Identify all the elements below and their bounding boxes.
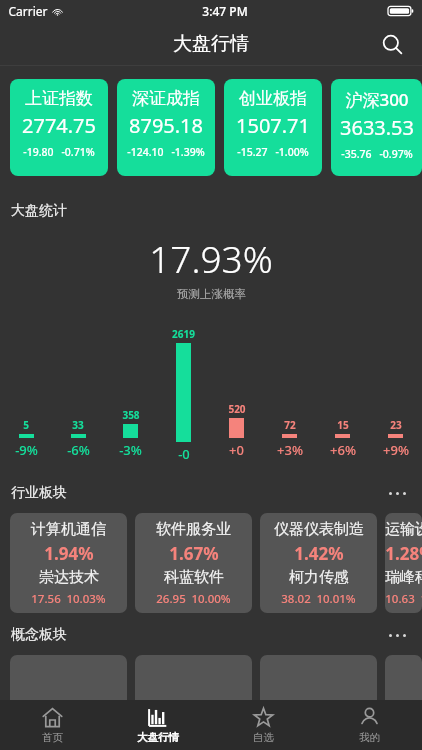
staticText: -124.10 [127, 145, 164, 159]
staticText: 仪器仪表制造 [274, 520, 364, 539]
staticText: 软件服务业 [156, 520, 231, 539]
staticText: -0.97% [379, 147, 413, 161]
staticText: +0 [229, 441, 244, 459]
button[interactable] [385, 655, 422, 750]
staticText: 3:47 PM [202, 3, 248, 19]
staticText: -3% [119, 441, 142, 459]
button[interactable]: 深证成指 [117, 79, 215, 176]
button[interactable]: 2619 [157, 327, 210, 459]
staticText: 358 [122, 408, 140, 422]
staticText: 计算机通信 [31, 520, 106, 539]
staticText: 运输设备 [385, 520, 422, 539]
button[interactable] [10, 655, 127, 750]
button[interactable]: 首页 [0, 700, 105, 750]
staticText: 2774.75 [22, 112, 96, 139]
button[interactable]: More [380, 481, 414, 505]
staticText: 5 [23, 418, 29, 432]
staticText: 上证指数 [25, 88, 93, 109]
staticText: 沪深300 [345, 88, 409, 111]
staticText: 大盘行情 [173, 32, 249, 56]
staticText: -35.76 [341, 147, 372, 161]
button[interactable]: 自选 [210, 700, 316, 750]
button[interactable]: 520 [210, 402, 263, 459]
staticText: 26.95 [156, 591, 186, 607]
staticText: 我的 [359, 731, 380, 744]
staticText: 科蓝软件 [164, 568, 224, 587]
button[interactable]: 358 [104, 408, 157, 459]
button[interactable]: More [380, 623, 414, 647]
staticText: 1.42% [294, 542, 344, 565]
staticText: 自选 [253, 731, 274, 744]
button[interactable]: 创业板指 [224, 79, 322, 176]
staticText: 10.03% [66, 591, 106, 607]
button[interactable]: Search [372, 24, 412, 64]
staticText: 38.02 [281, 591, 311, 607]
staticText: 瑞峰科技 [385, 568, 422, 587]
staticText: 首页 [42, 731, 63, 744]
staticText: 1.67% [169, 542, 219, 565]
button[interactable]: 仪器仪表制造 [260, 513, 377, 613]
button[interactable]: 5 [0, 418, 52, 459]
staticText: -1.39% [171, 145, 205, 159]
button[interactable]: 我的 [316, 700, 422, 750]
staticText: 1507.71 [236, 112, 310, 139]
staticText: 深证成指 [132, 88, 200, 109]
staticText: 23 [390, 418, 402, 432]
staticText: 2619 [172, 327, 195, 341]
staticText: 大盘行情 [137, 731, 179, 744]
staticText: -19.80 [23, 145, 54, 159]
staticText: 行业板块 [11, 484, 67, 502]
staticText: 520 [228, 402, 246, 416]
button[interactable]: 33 [52, 418, 104, 459]
staticText: -0.71% [61, 145, 95, 159]
button[interactable] [260, 655, 377, 750]
button[interactable] [135, 655, 252, 750]
button[interactable]: 72 [263, 418, 316, 459]
staticText: 10.02% [420, 591, 422, 607]
staticText: -15.27 [237, 145, 268, 159]
button[interactable]: 计算机通信 [10, 513, 127, 613]
staticText: 10.00% [191, 591, 231, 607]
staticText: 15 [337, 418, 349, 432]
staticText: 17.56 [31, 591, 61, 607]
staticText: -0 [178, 445, 190, 459]
button[interactable]: 软件服务业 [135, 513, 252, 613]
button[interactable]: 沪深300 [331, 79, 422, 176]
button[interactable]: 运输设备 [385, 513, 422, 613]
button[interactable]: 大盘行情 [105, 700, 210, 750]
staticText: 10.01% [316, 591, 356, 607]
staticText: +9% [383, 441, 409, 459]
staticText: 17.93% [149, 233, 273, 283]
staticText: 1.28% [385, 542, 422, 565]
staticText: 33 [72, 418, 84, 432]
button[interactable]: 15 [316, 418, 369, 459]
staticText: 3633.53 [340, 114, 414, 141]
staticText: -1.00% [275, 145, 309, 159]
staticText: 柯力传感 [289, 568, 349, 587]
staticText: 大盘统计 [11, 202, 67, 220]
button[interactable]: 上证指数 [10, 79, 108, 176]
staticText: +6% [330, 441, 356, 459]
staticText: 10.63 [385, 591, 415, 607]
staticText: +3% [277, 441, 303, 459]
staticText: 崇达技术 [39, 568, 99, 587]
staticText: 72 [284, 418, 296, 432]
button[interactable]: 23 [369, 418, 422, 459]
staticText: 概念板块 [11, 626, 67, 644]
staticText: 预测上涨概率 [177, 287, 246, 301]
staticText: 8795.18 [129, 112, 203, 139]
staticText: 创业板指 [239, 88, 307, 109]
staticText: Carrier [8, 3, 48, 19]
staticText: -6% [67, 441, 90, 459]
staticText: -9% [15, 441, 38, 459]
staticText: 1.94% [44, 542, 94, 565]
